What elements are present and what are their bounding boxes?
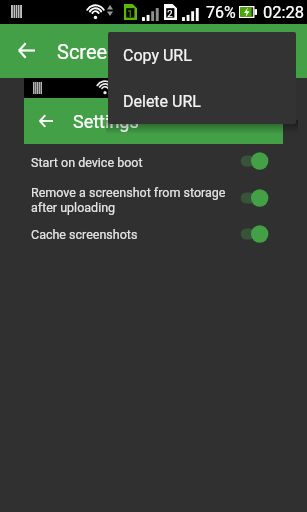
button[interactable]: Back (31, 106, 61, 136)
button[interactable]: Delete URL (108, 78, 296, 124)
button[interactable]: Start on device boot (0, 155, 307, 173)
button[interactable]: Remove a screenshot from storage (0, 185, 307, 217)
staticText: Cache screenshots (31, 227, 138, 242)
button[interactable]: Copy URL (108, 32, 296, 78)
staticText: 76% (206, 3, 236, 22)
staticText: Copy URL (123, 46, 192, 65)
staticText: Settings (73, 111, 139, 132)
staticText: after uploading (31, 200, 116, 215)
staticText: 2 (167, 8, 173, 17)
staticText: Screenshots (57, 40, 168, 63)
staticText: 02:28 (263, 3, 305, 22)
staticText: 1 (127, 8, 133, 17)
staticText: Remove a screenshot from storage (31, 185, 226, 200)
button[interactable]: Cache screenshots (0, 227, 307, 245)
staticText: Start on device boot (31, 155, 143, 170)
staticText: Delete URL (123, 92, 201, 111)
button[interactable]: Navigate up (9, 33, 43, 67)
